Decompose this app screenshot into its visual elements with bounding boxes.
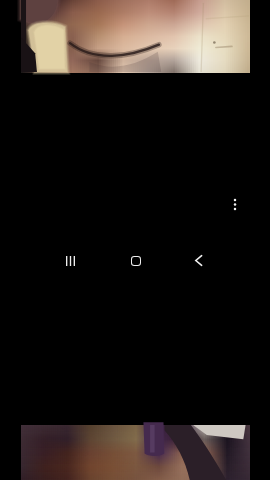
- button[interactable]: Home: [119, 244, 152, 277]
- button[interactable]: More options: [223, 193, 247, 216]
- button[interactable]: [21, 0, 249, 72]
- button[interactable]: Recents: [54, 244, 87, 277]
- button[interactable]: [21, 425, 249, 480]
- button[interactable]: Back: [182, 244, 215, 277]
